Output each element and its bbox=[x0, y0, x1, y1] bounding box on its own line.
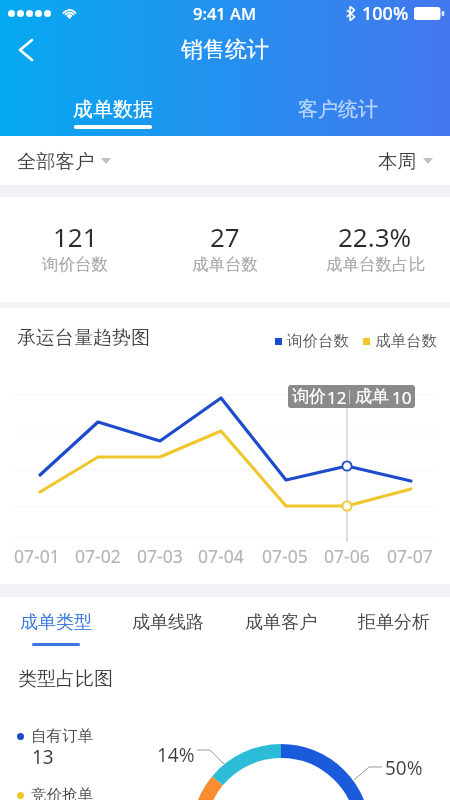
staticText: 10 bbox=[392, 386, 412, 408]
staticText: 询价台数 bbox=[287, 331, 349, 351]
staticText: 07-06 bbox=[324, 544, 370, 568]
button[interactable]: 成单数据 bbox=[0, 86, 225, 129]
staticText: 12 bbox=[327, 386, 347, 408]
staticText: 询价台数 bbox=[42, 254, 108, 275]
staticText: 07-05 bbox=[262, 544, 308, 568]
staticText: 07-01 bbox=[14, 544, 60, 568]
staticText: 竞价抢单 bbox=[31, 785, 93, 800]
staticText: 成单台数占比 bbox=[326, 254, 425, 275]
button[interactable]: 成单线路 bbox=[112, 597, 224, 643]
button[interactable]: 拒单分析 bbox=[337, 597, 450, 643]
button[interactable]: 成单客户 bbox=[224, 597, 337, 643]
staticText: 14% bbox=[157, 742, 195, 768]
staticText: 成单线路 bbox=[132, 611, 204, 634]
staticText: 询价 bbox=[292, 386, 326, 407]
staticText: 成单台数 bbox=[192, 254, 258, 275]
staticText: 销售统计 bbox=[181, 36, 269, 64]
staticText: 本周 bbox=[378, 149, 417, 173]
button[interactable]: 27 bbox=[150, 219, 300, 275]
staticText: 27 bbox=[210, 219, 240, 254]
staticText: 07-03 bbox=[137, 544, 183, 568]
staticText: 成单客户 bbox=[245, 611, 317, 634]
staticText: 50% bbox=[385, 755, 423, 781]
staticText: 07-02 bbox=[75, 544, 121, 568]
staticText: 成单台数 bbox=[375, 331, 437, 351]
button[interactable]: 121 bbox=[0, 219, 150, 275]
button[interactable]: 成单类型 bbox=[0, 597, 112, 646]
staticText: 成单 bbox=[355, 386, 389, 407]
staticText: 100% bbox=[362, 1, 409, 26]
staticText: 客户统计 bbox=[298, 97, 378, 122]
button[interactable]: 22.3% bbox=[300, 219, 450, 275]
staticText: 9:41 AM bbox=[193, 2, 257, 24]
staticText: 承运台量趋势图 bbox=[17, 326, 150, 350]
button[interactable]: 客户统计 bbox=[225, 86, 450, 125]
staticText: 自有订单 bbox=[31, 726, 93, 746]
staticText: 全部客户 bbox=[17, 149, 95, 173]
staticText: 121 bbox=[53, 219, 98, 254]
staticText: 07-04 bbox=[198, 544, 244, 568]
staticText: 22.3% bbox=[338, 219, 412, 254]
staticText: 07-07 bbox=[387, 544, 433, 568]
staticText: 拒单分析 bbox=[358, 611, 430, 634]
button[interactable]: 全部客户 bbox=[17, 149, 111, 173]
staticText: 类型占比图 bbox=[18, 667, 113, 691]
staticText: 成单数据 bbox=[73, 97, 153, 122]
button[interactable]: 本周 bbox=[378, 149, 433, 173]
staticText: 成单类型 bbox=[20, 611, 92, 634]
button[interactable]: Back bbox=[4, 28, 48, 72]
staticText: 13 bbox=[32, 744, 54, 770]
